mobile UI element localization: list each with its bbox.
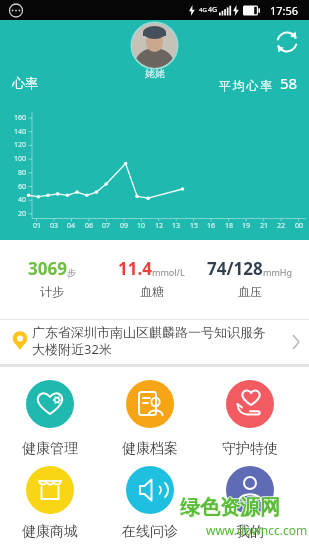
staticText: 广东省深圳市南山区麒麟路一号知识服务 大楼附近32米 (32, 324, 290, 362)
staticText: 60 (18, 182, 27, 192)
staticText: 18 (225, 221, 234, 231)
staticText: 健康商城 (22, 523, 78, 540)
button[interactable] (0, 255, 103, 305)
staticText: 17:56 (270, 3, 299, 18)
staticText: 11.4 (118, 257, 152, 279)
staticText: 4G (199, 6, 207, 14)
button[interactable] (226, 466, 274, 514)
staticText: 血糖 (140, 284, 164, 299)
staticText: 12 (155, 221, 164, 231)
staticText: 21 (260, 221, 269, 231)
staticText: 16 (207, 221, 216, 231)
staticText: 100 (14, 154, 27, 164)
staticText: mmol/L (152, 266, 185, 278)
staticText: 04 (67, 221, 76, 231)
staticText: 140 (14, 127, 27, 137)
staticText: 40 (18, 195, 27, 205)
staticText: mmHg (263, 266, 293, 278)
staticText: 74/128 (207, 257, 263, 279)
button[interactable] (198, 255, 301, 305)
staticText: 20 (18, 209, 27, 219)
staticText: 步 (67, 267, 76, 278)
button[interactable] (274, 29, 300, 55)
staticText: 心率 (12, 75, 38, 91)
staticText: 我的 (236, 523, 264, 540)
staticText: 80 (18, 168, 27, 178)
staticText: 13 (172, 221, 181, 231)
staticText: www.downcc.com (206, 522, 308, 538)
staticText: 120 (14, 140, 27, 150)
button[interactable] (100, 255, 203, 305)
button[interactable] (226, 380, 274, 428)
staticText: 03 (50, 221, 59, 231)
staticText: 平均心率 (219, 77, 280, 93)
staticText: 绿色资源网 (180, 495, 280, 520)
staticText: 07 (102, 221, 111, 231)
staticText: 健康管理 (22, 440, 78, 457)
staticText: 06 (85, 221, 94, 231)
staticText: 3069 (28, 257, 67, 279)
staticText: 160 (14, 113, 27, 123)
staticText: 01 (33, 221, 42, 231)
staticText: 00 (295, 221, 304, 231)
staticText: 09 (120, 221, 129, 231)
staticText: 健康档案 (122, 440, 178, 457)
staticText: 在线问诊 (122, 523, 178, 540)
staticText: 绿色资源网 (179, 495, 279, 520)
staticText: 58 (280, 73, 298, 93)
staticText: 姥姥 (145, 67, 165, 80)
staticText: 4G (208, 5, 218, 15)
button[interactable]: 广东省深圳市南山区麒麟路一号知识服务 大楼附近32米 (0, 320, 309, 364)
staticText: 15 (190, 221, 199, 231)
staticText: 19 (242, 221, 251, 231)
button[interactable] (126, 466, 174, 514)
staticText: 绿色资源网 (180, 494, 280, 519)
button[interactable] (26, 466, 74, 514)
staticText: 守护特使 (222, 440, 278, 457)
button[interactable] (132, 23, 177, 68)
button[interactable] (126, 380, 174, 428)
staticText: 10 (137, 221, 146, 231)
staticText: 绿色资源网 (180, 496, 280, 521)
button[interactable] (26, 380, 74, 428)
staticText: 血压 (238, 284, 262, 299)
staticText: 绿色资源网 (181, 495, 281, 520)
staticText: 计步 (40, 284, 64, 299)
staticText: 22 (277, 221, 286, 231)
